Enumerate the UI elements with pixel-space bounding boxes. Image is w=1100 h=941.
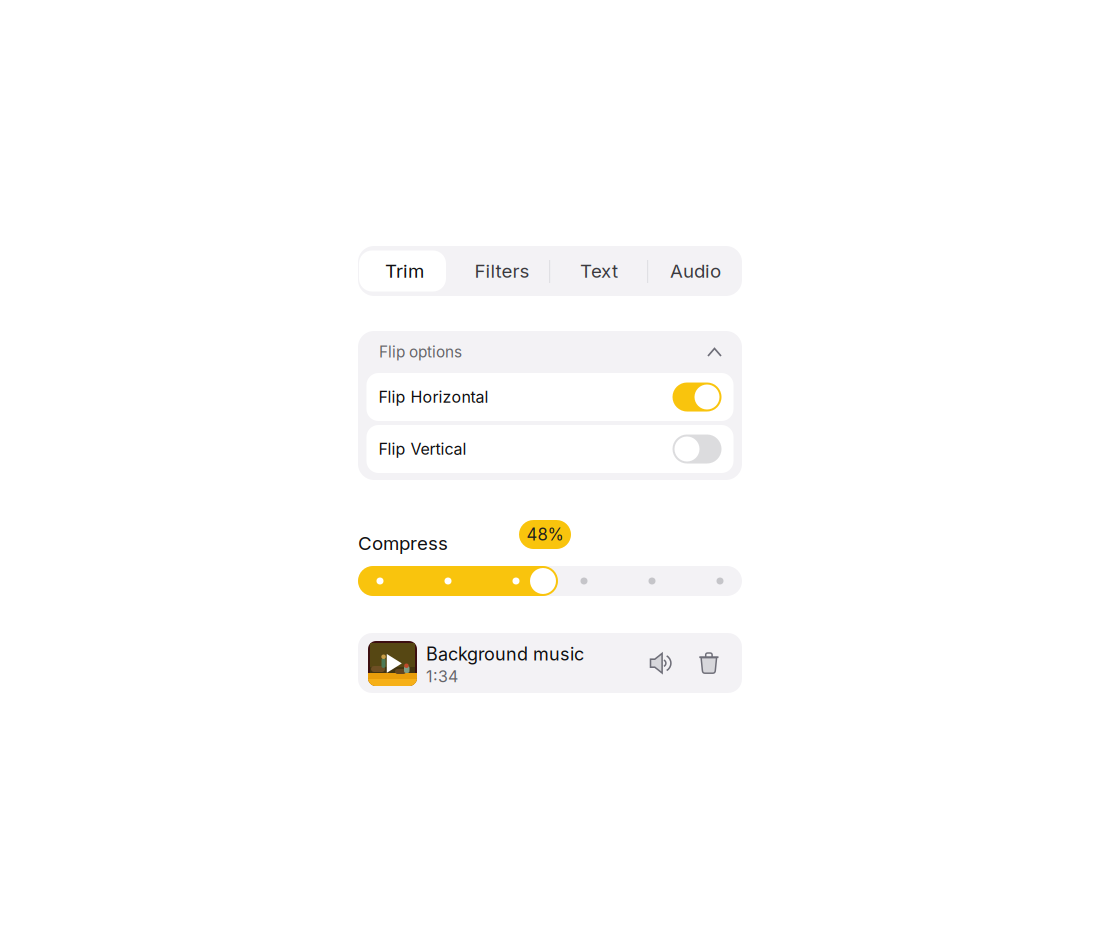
staticText: Flip Vertical xyxy=(378,439,466,459)
button[interactable]: Flip options xyxy=(379,331,722,373)
button[interactable]: Background music xyxy=(358,633,742,693)
button[interactable]: Compression level 48 percent xyxy=(358,566,742,596)
button[interactable]: Delete xyxy=(689,643,729,683)
staticText: Text xyxy=(580,260,618,282)
staticText: Flip Horizontal xyxy=(378,387,488,407)
button[interactable]: Flip Vertical xyxy=(366,425,733,473)
staticText: Audio xyxy=(670,260,721,282)
button[interactable]: Audio xyxy=(647,246,742,296)
staticText: Flip options xyxy=(379,343,462,361)
staticText: 48% xyxy=(526,524,563,545)
staticText: Filters xyxy=(474,260,529,282)
button[interactable]: Trim xyxy=(358,246,447,296)
staticText: 1:34 xyxy=(426,667,458,686)
staticText: Background music xyxy=(426,643,584,665)
button[interactable]: Mute xyxy=(641,643,681,683)
button[interactable]: Filters xyxy=(447,246,549,296)
button[interactable]: Text xyxy=(549,246,647,296)
staticText: Trim xyxy=(385,260,424,282)
staticText: Compress xyxy=(358,532,448,555)
button[interactable]: Flip Horizontal xyxy=(366,373,733,421)
